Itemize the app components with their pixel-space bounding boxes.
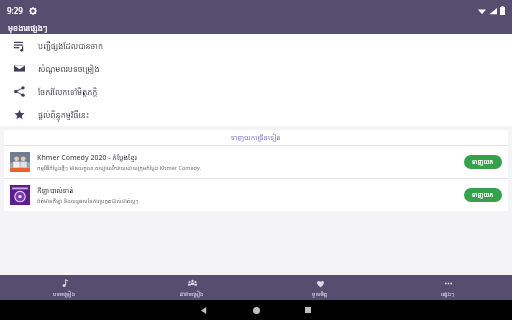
staticText: ផ្តល់ពិន្ទុកម្មវិធីនេះ <box>38 109 89 120</box>
staticText: ទាញយកច្រើនទៀត <box>231 133 281 143</box>
staticText: 9:29 <box>7 5 23 16</box>
button[interactable]: Khmer Comedy 2020 - កំប្លែងខ្មែរ <box>4 146 508 178</box>
button[interactable]: ទាញយក <box>464 188 502 202</box>
button[interactable]: ផ្សេងៗ <box>384 275 512 300</box>
staticText: កីឡាបាល់ទាត់ <box>37 186 74 196</box>
staticText: តារាចម្រៀង <box>180 290 204 297</box>
button[interactable]: ទាញយក <box>464 155 502 169</box>
staticText: កម្មវិធីកំប្លែងថ្មីៗ មានលក្ខណៈសប្បាយរីករ… <box>37 164 201 171</box>
staticText: សំណូមពរបទចម្រៀង <box>38 63 100 74</box>
button[interactable]: ចែករំលែកទៅមិត្តភក្តិ <box>0 80 512 103</box>
staticText: ចែករំលែកទៅមិត្តភក្តិ <box>38 86 98 97</box>
button[interactable]: ផ្តល់ពិន្ទុកម្មវិធីនេះ <box>0 103 512 126</box>
button[interactable]: បញ្ជីផ្សងដែលបានចាក <box>0 34 512 57</box>
button[interactable]: Recent apps <box>295 300 321 320</box>
button[interactable]: ទាញយកច្រើនទៀត <box>4 130 508 145</box>
button[interactable]: តារាចម្រៀង <box>128 275 256 300</box>
staticText: ចូលចិត្ត <box>312 290 328 297</box>
button[interactable]: កីឡាបាល់ទាត់ <box>4 179 508 211</box>
staticText: Khmer Comedy 2020 - កំប្លែងខ្មែរ <box>37 153 137 163</box>
button[interactable]: Home <box>243 300 269 320</box>
staticText: បញ្ជីផ្សងដែលបានចាក <box>38 40 104 51</box>
staticText: ព័ត៌មានកីឡា និងលទ្ធផលនៃការប្រកួតបាល់ទាត់… <box>37 197 139 204</box>
staticText: ផ្សេងៗ <box>441 290 455 297</box>
staticText: មុខងារផ្សេងៗ <box>8 22 48 33</box>
staticText: ទាញយក <box>472 158 494 166</box>
button[interactable]: Back <box>191 300 217 320</box>
button[interactable]: បទចម្រៀង <box>0 275 128 300</box>
staticText: បទចម្រៀង <box>53 290 75 297</box>
staticText: ទាញយក <box>472 191 494 199</box>
button[interactable]: ចូលចិត្ត <box>256 275 384 300</box>
button[interactable]: សំណូមពរបទចម្រៀង <box>0 57 512 80</box>
